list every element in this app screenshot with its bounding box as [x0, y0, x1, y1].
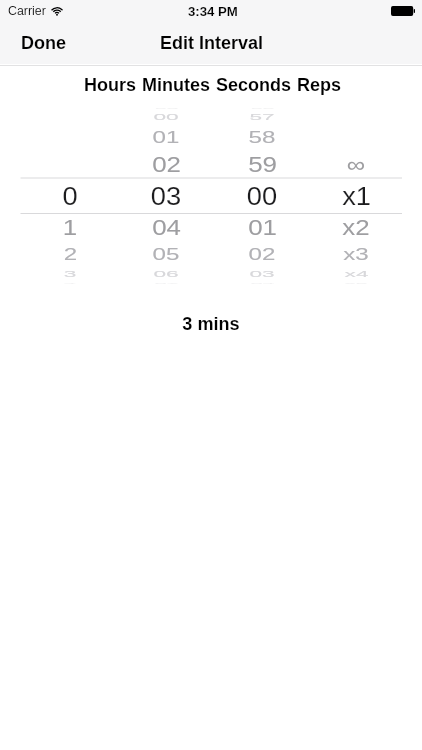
staticText: 2	[64, 245, 77, 263]
other: Battery	[391, 6, 415, 16]
staticText: 58	[248, 128, 276, 146]
button[interactable]: Minutes wheel, 03	[119, 100, 213, 290]
staticText: 3 mins	[182, 314, 240, 334]
staticText: 3	[64, 269, 76, 279]
staticText: Carrier	[8, 4, 46, 18]
staticText: ∞	[346, 152, 366, 176]
staticText: 59	[248, 152, 277, 176]
staticText: 4	[64, 282, 76, 284]
staticText: 02	[248, 245, 276, 263]
staticText: Done	[21, 33, 66, 53]
button[interactable]: Hours wheel, 0	[23, 100, 117, 290]
staticText: Hours	[84, 75, 137, 95]
staticText: 06	[153, 269, 179, 279]
staticText: 04	[152, 215, 181, 239]
staticText: 03	[151, 182, 181, 210]
staticText: 02	[152, 152, 181, 176]
staticText: 56	[250, 107, 274, 109]
staticText: 1	[62, 215, 78, 239]
staticText: x1	[342, 182, 371, 210]
staticText: Reps	[297, 75, 342, 95]
staticText: x2	[342, 215, 370, 239]
staticText: 0	[62, 182, 78, 210]
staticText: 01	[152, 128, 180, 146]
button[interactable]: Done	[0, 24, 82, 62]
staticText: x3	[343, 245, 369, 263]
staticText: 03	[249, 269, 275, 279]
staticText: 07	[154, 282, 178, 284]
staticText: x4	[344, 269, 369, 279]
button[interactable]: Seconds wheel, 00	[215, 100, 309, 290]
staticText: Edit Interval	[160, 33, 264, 53]
button[interactable]: Reps wheel, x1	[309, 100, 403, 290]
staticText: Minutes	[142, 75, 211, 95]
staticText: 3:34 PM	[188, 4, 238, 19]
staticText: Seconds	[216, 75, 292, 95]
staticText: 04	[250, 282, 274, 284]
staticText: 57	[249, 112, 275, 122]
staticText: 00	[153, 112, 179, 122]
staticText: 01	[248, 215, 277, 239]
staticText: 05	[152, 245, 180, 263]
staticText: x5	[344, 282, 367, 284]
staticText: 00	[247, 182, 277, 210]
staticText: 59	[154, 107, 178, 109]
